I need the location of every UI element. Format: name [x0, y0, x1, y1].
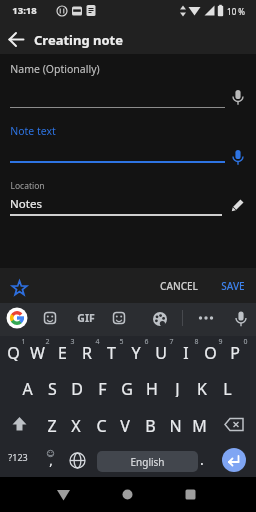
staticText: Z	[47, 415, 57, 434]
staticText: 13:18	[12, 4, 37, 17]
staticText: Location	[10, 180, 45, 192]
staticText: D	[71, 378, 83, 397]
button[interactable]: Note text	[10, 123, 90, 139]
button[interactable]: Notes	[10, 196, 90, 212]
button[interactable]: R	[76, 342, 98, 361]
button[interactable]	[11, 280, 28, 297]
staticText: ,	[49, 451, 53, 469]
staticText: L	[223, 378, 232, 397]
button[interactable]	[224, 415, 244, 434]
button[interactable]: S	[41, 378, 63, 397]
button[interactable]	[185, 489, 196, 500]
staticText: E	[58, 342, 67, 361]
button[interactable]: U	[150, 342, 172, 361]
staticText: F	[98, 378, 107, 397]
staticText: M	[192, 415, 207, 434]
staticText: X	[71, 415, 81, 434]
staticText: 5	[119, 337, 124, 347]
button[interactable]	[230, 149, 246, 166]
button[interactable]: E	[51, 342, 73, 361]
button[interactable]: O	[199, 342, 221, 361]
staticText: 3	[70, 337, 75, 347]
staticText: B	[145, 415, 156, 434]
button[interactable]: I	[175, 342, 197, 361]
staticText: 9	[218, 337, 223, 347]
button[interactable]: Q	[2, 342, 24, 361]
staticText: C	[96, 415, 107, 434]
staticText: SAVE	[221, 279, 245, 293]
button[interactable]	[6, 307, 28, 329]
button[interactable]	[230, 89, 246, 106]
staticText: Notes	[10, 196, 42, 212]
staticText: V	[120, 415, 130, 434]
button[interactable]: C	[90, 415, 112, 434]
staticText: I	[183, 342, 189, 361]
staticText: J	[175, 378, 180, 397]
button[interactable]: N	[164, 415, 186, 434]
button[interactable]	[111, 310, 127, 326]
button[interactable]: G	[116, 378, 138, 397]
staticText: 0	[243, 337, 248, 347]
button[interactable]	[55, 487, 72, 503]
staticText: O	[204, 342, 217, 361]
staticText: U	[155, 342, 167, 361]
staticText: R	[82, 342, 92, 361]
staticText: 1	[21, 337, 26, 347]
staticText: N	[169, 415, 182, 434]
button[interactable]: English	[97, 451, 198, 472]
button[interactable]: M	[188, 415, 210, 434]
button[interactable]: ?123	[4, 448, 31, 466]
staticText: 10 %	[227, 6, 245, 17]
staticText: Note text	[10, 124, 56, 138]
button[interactable]: W	[26, 342, 48, 361]
button[interactable]	[8, 31, 25, 48]
staticText: 2	[45, 337, 50, 347]
button[interactable]: SAVE	[206, 276, 256, 296]
button[interactable]: GIF	[72, 310, 100, 326]
button[interactable]: T	[100, 342, 122, 361]
staticText: .	[200, 450, 204, 469]
staticText: H	[146, 378, 158, 397]
button[interactable]	[229, 198, 245, 214]
button[interactable]	[10, 415, 29, 433]
staticText: G	[121, 378, 133, 397]
button[interactable]	[233, 310, 249, 328]
staticText: K	[197, 378, 207, 397]
button[interactable]: L	[216, 378, 238, 397]
button[interactable]: H	[141, 378, 163, 397]
staticText: Y	[131, 342, 141, 361]
button[interactable]	[122, 489, 133, 500]
button[interactable]: F	[91, 378, 113, 397]
button[interactable]: Y	[125, 342, 147, 361]
staticText: GIF	[77, 311, 95, 325]
staticText: 6	[144, 337, 149, 347]
button[interactable]: B	[139, 415, 161, 434]
button[interactable]	[42, 310, 58, 326]
staticText: CANCEL	[160, 279, 198, 293]
button[interactable]: V	[114, 415, 136, 434]
staticText: T	[107, 342, 116, 361]
button[interactable]: X	[65, 415, 87, 434]
button[interactable]	[152, 311, 168, 327]
button[interactable]: Z	[41, 415, 63, 434]
button[interactable]: A	[16, 378, 38, 397]
staticText: W	[30, 342, 45, 361]
button[interactable]: P	[224, 342, 246, 361]
staticText: English	[130, 455, 165, 469]
button[interactable]	[69, 452, 86, 469]
button[interactable]: ,	[42, 451, 60, 469]
button[interactable]: D	[66, 378, 88, 397]
button[interactable]	[198, 310, 214, 326]
staticText: 4	[95, 337, 100, 347]
staticText: 8	[194, 337, 199, 347]
button[interactable]: .	[193, 449, 211, 469]
button[interactable]: K	[191, 378, 213, 397]
button[interactable]	[222, 448, 246, 472]
button[interactable]: CANCEL	[149, 276, 209, 296]
staticText: S	[48, 378, 57, 397]
button[interactable]: J	[166, 378, 188, 397]
staticText: Creating note	[34, 31, 123, 49]
staticText: A	[22, 378, 33, 397]
staticText: P	[230, 342, 240, 361]
button[interactable]: Name (Optionally)	[10, 61, 120, 77]
